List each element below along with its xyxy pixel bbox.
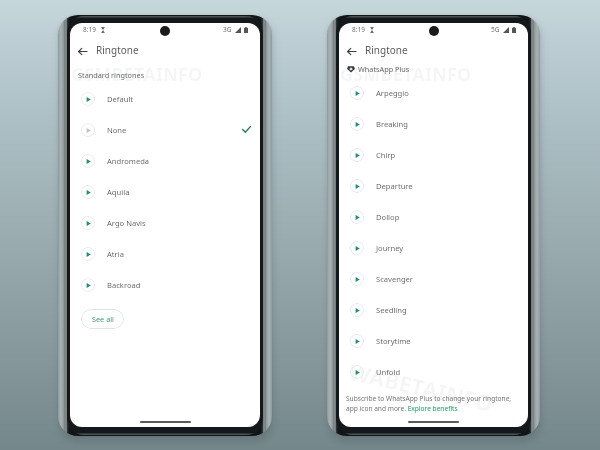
staticText: Arpeggio (376, 88, 409, 98)
button[interactable]: Scavenger (339, 263, 528, 294)
button[interactable]: Journey (339, 232, 528, 263)
staticText: Journey (376, 243, 404, 253)
staticText: Argo Navis (107, 218, 146, 228)
button[interactable]: Arpeggio (339, 77, 528, 108)
staticText: Storytime (376, 336, 411, 346)
button[interactable]: Default (70, 83, 260, 114)
staticText: Standard ringtones (78, 70, 145, 80)
staticText: 8:19 (352, 25, 365, 34)
button[interactable]: Storytime (339, 325, 528, 356)
button[interactable]: Breaking (339, 108, 528, 139)
staticText: Subscribe to WhatsApp Plus to change you… (346, 394, 522, 413)
staticText: 8:19 (83, 25, 96, 34)
staticText: WABETAINFO (346, 356, 496, 418)
button[interactable]: None (70, 114, 260, 145)
staticText: Backroad (107, 280, 141, 290)
staticText: WhatsApp Plus (358, 64, 410, 74)
button[interactable]: Dollop (339, 201, 528, 232)
staticText: GSMBETAINFO (71, 62, 203, 87)
button[interactable]: Argo Navis (70, 207, 260, 238)
staticText: Ringtone (365, 43, 408, 57)
staticText: Scavenger (376, 274, 413, 284)
staticText: Default (107, 94, 134, 104)
staticText: None (107, 125, 127, 135)
staticText: Dollop (376, 212, 400, 222)
button[interactable]: Back (342, 42, 360, 60)
staticText: Breaking (376, 119, 408, 129)
button[interactable]: Atria (70, 238, 260, 269)
staticText: Andromeda (107, 156, 150, 166)
staticText: 5G (491, 25, 500, 34)
staticText: Unfold (376, 367, 401, 377)
staticText: Departure (376, 181, 413, 191)
button[interactable]: Andromeda (70, 145, 260, 176)
button[interactable]: Chirp (339, 139, 528, 170)
staticText: 3G (223, 25, 232, 34)
button[interactable]: See all (81, 309, 124, 329)
staticText: Atria (107, 249, 124, 259)
button[interactable]: Aquila (70, 176, 260, 207)
button[interactable]: Departure (339, 170, 528, 201)
staticText: Chirp (376, 150, 396, 160)
staticText: Aquila (107, 187, 130, 197)
button[interactable]: Unfold (339, 356, 528, 387)
button[interactable]: Seedling (339, 294, 528, 325)
button[interactable]: Backroad (70, 269, 260, 300)
staticText: Seedling (376, 305, 407, 315)
staticText: GSMBETAINFO (340, 62, 472, 87)
staticText: Ringtone (96, 43, 139, 57)
button[interactable]: Back (73, 42, 91, 60)
staticText: See all (92, 314, 114, 324)
